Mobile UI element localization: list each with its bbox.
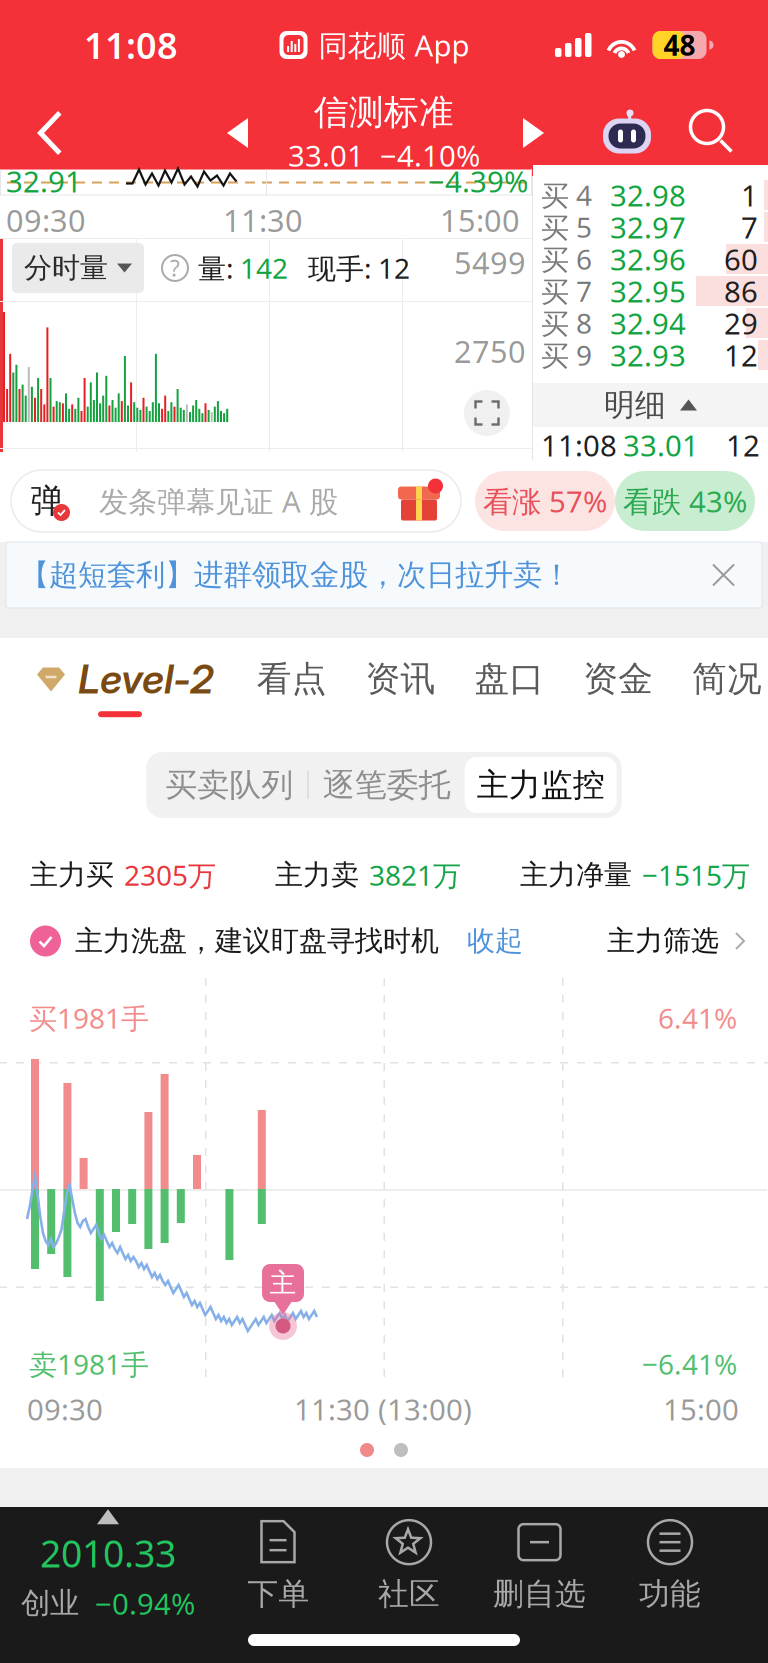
staticText: 主力洗盘，建议盯盘寻找时机	[75, 924, 439, 958]
staticText: 现手:	[308, 249, 372, 287]
staticText: −4.39%	[428, 161, 528, 200]
staticText: 看点	[257, 658, 327, 700]
button[interactable]: 2010.33	[8, 1509, 208, 1623]
button[interactable]: Previous stock	[210, 90, 266, 176]
staticText: 主力监控	[477, 765, 605, 805]
staticText: 2305万	[124, 856, 216, 894]
button[interactable]: 简况	[692, 658, 762, 714]
staticText: 盘口	[474, 658, 544, 700]
button[interactable]: 主力筛选	[607, 924, 746, 958]
staticText: −6.41%	[642, 1345, 737, 1383]
staticText: 卖1981手	[29, 1345, 149, 1383]
button[interactable]: 逐笔委托	[309, 757, 465, 813]
staticText: 主	[269, 1267, 296, 1299]
staticText: 买 4	[541, 176, 592, 214]
staticText: 32.94	[610, 303, 686, 342]
staticText: 12	[724, 335, 758, 374]
staticText: 量:	[198, 249, 234, 287]
staticText: 【超短套利】进群领取金股，次日拉升卖！	[20, 557, 571, 593]
staticText: ?	[170, 253, 180, 283]
staticText: 买 5	[541, 208, 592, 246]
button[interactable]: 看跌 43%	[615, 471, 755, 531]
staticText: 弹	[30, 480, 63, 521]
staticText: 逐笔委托	[323, 765, 451, 805]
staticText: 创业	[21, 1585, 79, 1621]
staticText: 12	[378, 249, 410, 287]
staticText: 15:00	[663, 1389, 739, 1428]
staticText: 下单	[247, 1575, 309, 1613]
button[interactable]: Back	[16, 90, 84, 176]
staticText: 分时量	[24, 251, 108, 285]
staticText: 7	[741, 207, 758, 246]
staticText: 主力净量	[520, 858, 632, 892]
staticText: 32.98	[610, 175, 686, 214]
button[interactable]: 下单	[218, 1519, 338, 1613]
staticText: 32.96	[610, 239, 686, 278]
staticText: 资金	[583, 658, 653, 700]
staticText: 2750	[454, 331, 526, 371]
staticText: 删自选	[493, 1575, 586, 1613]
button[interactable]: 看点	[257, 658, 327, 714]
staticText: 信测标准	[314, 91, 454, 134]
staticText: 11:30	[223, 200, 303, 240]
button[interactable]: 删自选	[479, 1519, 599, 1613]
button[interactable]: 明细	[533, 383, 768, 427]
staticText: 142	[240, 249, 288, 287]
staticText: 3821万	[369, 856, 461, 894]
staticText: 48	[663, 26, 695, 64]
staticText: 主力买	[30, 858, 114, 892]
button[interactable]: 弹	[11, 470, 461, 532]
staticText: 买 6	[541, 240, 592, 278]
staticText: 2010.33	[40, 1528, 176, 1578]
staticText: 12	[726, 425, 760, 464]
button[interactable]: Next stock	[505, 90, 561, 176]
button[interactable]: 资金	[583, 658, 653, 714]
button[interactable]: 收起	[467, 924, 523, 958]
staticText: 社区	[378, 1575, 440, 1613]
button[interactable]: 【超短套利】进群领取金股，次日拉升卖！	[6, 542, 762, 608]
button[interactable]: Fullscreen chart	[464, 390, 510, 436]
staticText: 资讯	[366, 658, 436, 700]
staticText: 买 7	[541, 272, 592, 310]
staticText: 收起	[467, 924, 523, 958]
button[interactable]: 分时量	[12, 243, 144, 293]
staticText: 买卖队列	[165, 765, 293, 805]
staticText: 32.93	[610, 335, 686, 374]
staticText: −0.94%	[95, 1584, 195, 1623]
staticText: −1515万	[642, 856, 750, 894]
staticText: 看涨 57%	[483, 481, 607, 520]
button[interactable]: 资讯	[366, 658, 436, 714]
staticText: 09:30	[6, 200, 86, 240]
staticText: 简况	[692, 658, 762, 700]
staticText: Level-2	[78, 655, 214, 703]
staticText: 买 9	[541, 336, 592, 374]
staticText: 60	[724, 239, 758, 278]
staticText: 主力筛选	[607, 924, 719, 958]
button[interactable]: Search	[690, 110, 734, 154]
staticText: 看跌 43%	[623, 481, 747, 520]
staticText: 6.41%	[658, 999, 737, 1037]
staticText: 33.01 −4.10%	[288, 136, 480, 175]
button[interactable]: 功能	[610, 1519, 730, 1613]
button[interactable]: 主力监控	[465, 757, 617, 813]
staticText: 明细	[604, 386, 666, 424]
button[interactable]: Level-2	[0, 655, 218, 717]
staticText: 29	[724, 303, 758, 342]
button[interactable]: 看涨 57%	[475, 471, 615, 531]
button[interactable]: 盘口	[474, 658, 544, 714]
staticText: 33.01	[623, 425, 699, 464]
button[interactable]: 买卖队列	[151, 757, 307, 813]
staticText: 11:08	[84, 21, 178, 69]
staticText: 32.91	[6, 161, 82, 200]
staticText: 5499	[454, 242, 526, 283]
staticText: 1	[741, 175, 758, 214]
button[interactable]: AI assistant	[600, 107, 654, 159]
staticText: 11:08	[541, 425, 617, 464]
staticText: 同花顺 App	[318, 25, 469, 64]
staticText: 主力卖	[275, 858, 359, 892]
staticText: 功能	[639, 1575, 701, 1613]
staticText: 32.95	[610, 271, 686, 310]
staticText: 32.97	[610, 207, 686, 246]
staticText: 买1981手	[29, 999, 149, 1037]
button[interactable]: 社区	[349, 1519, 469, 1613]
